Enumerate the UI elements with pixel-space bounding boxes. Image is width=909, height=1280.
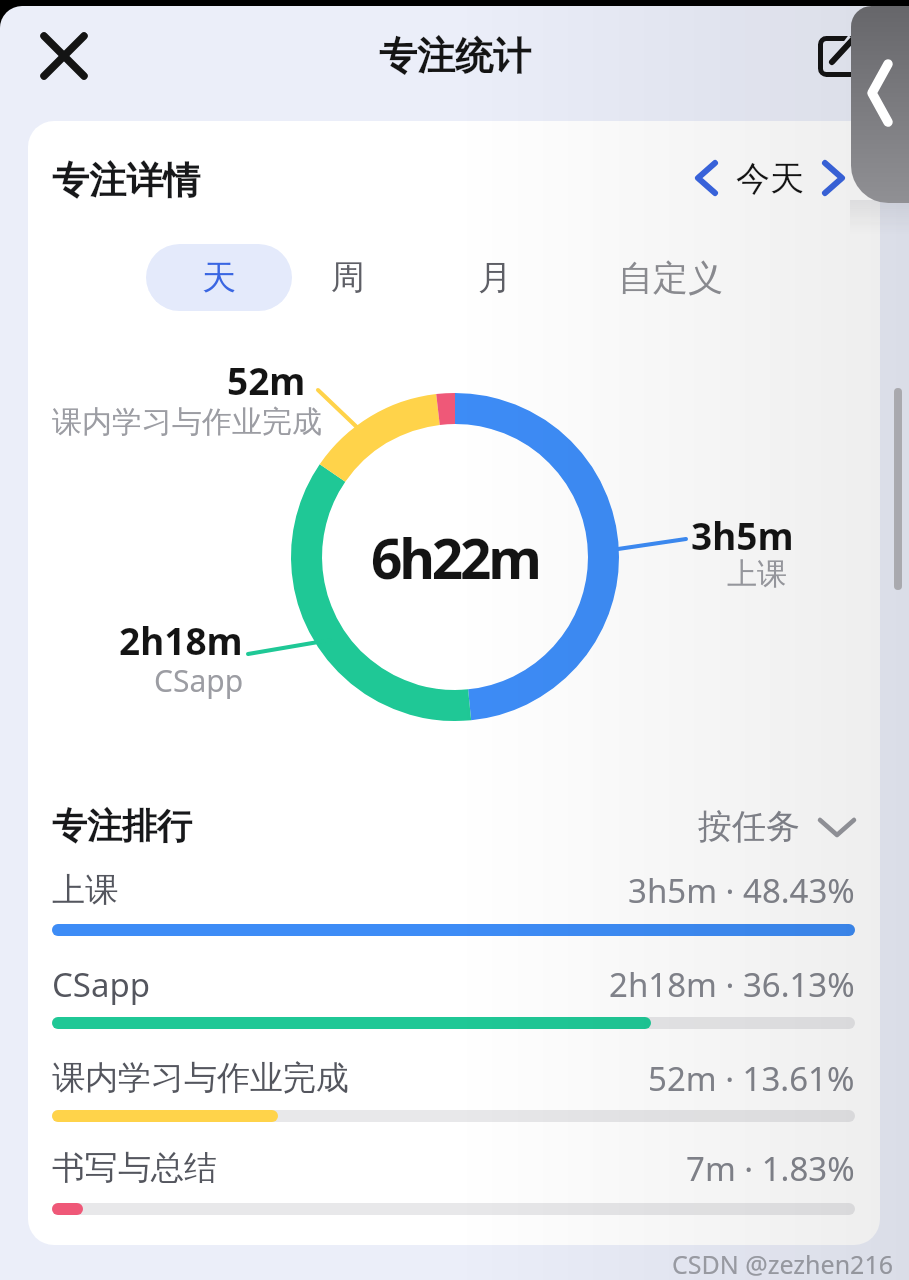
button[interactable]: 月 [447,244,543,311]
staticText: 按任务 [698,805,800,848]
staticText: 7m · 1.83% [686,1146,855,1190]
staticText: 52m [227,355,306,399]
button[interactable]: 周 [300,244,396,311]
button[interactable]: 今天 [680,150,860,206]
staticText: 今天 [736,157,804,200]
staticText: 专注排行 [52,804,192,848]
staticText: CSapp [52,962,151,1006]
staticText: 3h5m · 48.43% [628,868,855,912]
button[interactable]: 按任务 [698,804,860,848]
staticText: 周 [331,256,365,299]
button[interactable]: 自定义 [586,244,754,311]
staticText: 上课 [52,869,118,911]
button[interactable] [818,32,866,80]
button[interactable]: 天 [146,244,292,311]
button[interactable] [851,6,909,203]
staticText: 专注统计 [379,32,531,80]
staticText: 月 [478,256,512,299]
staticText: 52m · 13.61% [648,1056,855,1100]
staticText: CSDN @zezhen216 [672,1247,894,1277]
staticText: 天 [202,256,236,299]
staticText: 专注详情 [52,157,200,204]
staticText: 课内学习与作业完成 [52,403,322,441]
staticText: 自定义 [618,256,723,300]
staticText: 2h18m · 36.13% [609,962,855,1006]
staticText: 上课 [727,555,787,593]
staticText: 课内学习与作业完成 [52,1057,349,1099]
staticText: 6h22m [371,520,539,595]
staticText: 3h5m [691,510,794,554]
staticText: 2h18m [119,615,243,659]
button[interactable] [41,33,87,79]
staticText: CSapp [154,660,244,700]
staticText: 书写与总结 [52,1147,217,1189]
